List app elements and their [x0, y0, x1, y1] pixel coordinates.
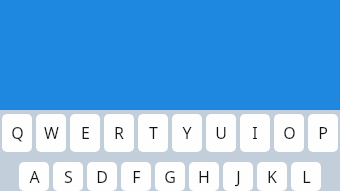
staticText: L	[302, 166, 311, 188]
staticText: J	[236, 166, 241, 188]
button[interactable]: I	[240, 114, 270, 152]
button[interactable]: Y	[172, 114, 202, 152]
button[interactable]: F	[121, 162, 151, 191]
staticText: W	[44, 122, 59, 144]
staticText: H	[198, 166, 210, 188]
button[interactable]: K	[257, 162, 287, 191]
staticText: D	[96, 166, 108, 188]
button[interactable]: H	[189, 162, 219, 191]
staticText: O	[283, 122, 296, 144]
button[interactable]: W	[36, 114, 66, 152]
staticText: P	[318, 122, 328, 144]
button[interactable]: S	[53, 162, 83, 191]
staticText: E	[81, 122, 90, 144]
staticText: I	[252, 122, 258, 144]
button[interactable]: G	[155, 162, 185, 191]
button[interactable]: R	[104, 114, 134, 152]
button[interactable]: T	[138, 114, 168, 152]
button[interactable]: Q	[2, 114, 32, 152]
staticText: S	[64, 166, 73, 188]
button[interactable]: U	[206, 114, 236, 152]
staticText: R	[114, 122, 124, 144]
staticText: G	[164, 166, 176, 188]
button[interactable]: J	[223, 162, 253, 191]
button[interactable]: A	[19, 162, 49, 191]
button[interactable]: E	[70, 114, 100, 152]
staticText: U	[215, 122, 227, 144]
staticText: K	[267, 166, 277, 188]
button[interactable]: O	[274, 114, 304, 152]
button[interactable]: L	[291, 162, 321, 191]
staticText: Y	[182, 122, 192, 144]
staticText: F	[132, 166, 141, 188]
button[interactable]: D	[87, 162, 117, 191]
button[interactable]: P	[308, 114, 338, 152]
staticText: T	[149, 122, 158, 144]
staticText: Q	[11, 122, 24, 144]
staticText: A	[29, 166, 40, 188]
